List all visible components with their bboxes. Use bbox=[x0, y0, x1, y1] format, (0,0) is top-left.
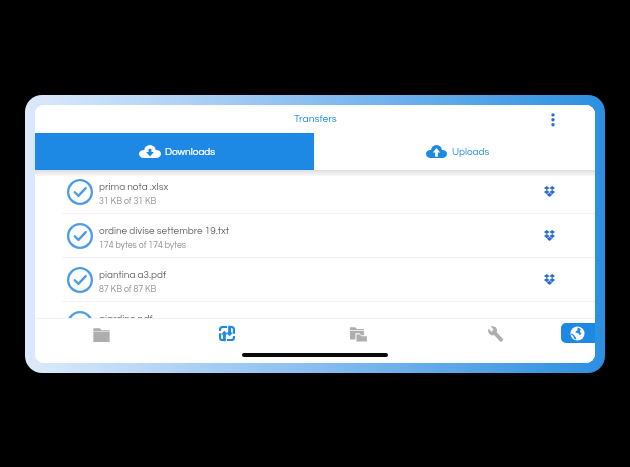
staticText: Transfers bbox=[294, 114, 337, 125]
button[interactable]: giardino.pdf bbox=[35, 302, 595, 346]
staticText: ordine divise settembre 19.txt bbox=[99, 226, 230, 236]
button[interactable]: ordine divise settembre 19.txt bbox=[35, 214, 595, 258]
staticText: prima nota .xlsx bbox=[99, 182, 169, 192]
staticText: 174 bytes of 174 bytes bbox=[99, 241, 187, 250]
button[interactable]: More options bbox=[538, 105, 568, 133]
button[interactable]: Browser bbox=[561, 323, 595, 343]
staticText: 12 KB of 34 KB bbox=[99, 329, 157, 338]
staticText: piantina a3.pdf bbox=[99, 270, 166, 280]
button[interactable]: piantina a3.pdf bbox=[35, 258, 595, 302]
button[interactable]: prima nota .xlsx bbox=[35, 170, 595, 214]
staticText: giardino.pdf bbox=[99, 314, 153, 324]
staticText: 87 KB of 87 KB bbox=[99, 285, 157, 294]
staticText: Downloads bbox=[165, 147, 216, 157]
button[interactable]: Uploads bbox=[314, 133, 595, 170]
staticText: Uploads bbox=[452, 147, 490, 157]
staticText: 31 KB of 31 KB bbox=[99, 197, 157, 206]
button[interactable]: Tools bbox=[474, 318, 518, 349]
button[interactable]: Downloads bbox=[35, 133, 314, 170]
button[interactable]: Transfers bbox=[205, 318, 249, 349]
button[interactable]: Shared bbox=[336, 318, 381, 349]
button[interactable]: Files bbox=[79, 318, 124, 349]
